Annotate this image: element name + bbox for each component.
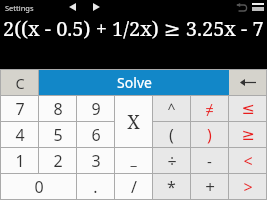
staticText: 0 xyxy=(34,176,44,198)
staticText: 4 xyxy=(15,124,25,146)
button[interactable]: ≤ xyxy=(229,96,266,121)
staticText: 7 xyxy=(15,98,25,120)
button[interactable]: * xyxy=(153,174,190,199)
staticText: ≤ xyxy=(241,99,255,118)
staticText: ÷ xyxy=(167,150,177,172)
button[interactable]: - xyxy=(191,148,228,173)
button[interactable] xyxy=(229,70,266,95)
staticText: ( xyxy=(169,124,174,146)
button[interactable]: / xyxy=(115,174,152,199)
button[interactable]: ^ xyxy=(153,96,190,121)
button[interactable] xyxy=(250,0,266,14)
button[interactable]: + xyxy=(191,174,228,199)
button[interactable]: . xyxy=(77,174,114,199)
staticText: 5 xyxy=(53,124,63,146)
staticText: X xyxy=(127,109,140,135)
staticText: 6 xyxy=(91,124,101,146)
staticText: Solve xyxy=(117,73,152,92)
button[interactable]: 4 xyxy=(1,122,38,147)
staticText: 8 xyxy=(53,98,63,120)
button[interactable]: > xyxy=(229,174,266,199)
button[interactable]: 0 xyxy=(1,174,76,199)
staticText: C xyxy=(15,73,25,93)
button[interactable]: 8 xyxy=(39,96,76,121)
button[interactable]: 3 xyxy=(77,148,114,173)
button[interactable]: 1 xyxy=(1,148,38,173)
button[interactable]: Settings xyxy=(0,0,45,14)
button[interactable]: 7 xyxy=(1,96,38,121)
button[interactable]: 2 xyxy=(39,148,76,173)
staticText: < xyxy=(243,150,253,172)
staticText: 1 xyxy=(15,150,25,172)
staticText: / xyxy=(131,176,137,198)
staticText: > xyxy=(243,176,253,198)
button[interactable]: ÷ xyxy=(153,148,190,173)
button[interactable] xyxy=(63,0,81,14)
staticText: ) xyxy=(207,124,212,146)
button[interactable]: _ xyxy=(115,148,152,173)
button[interactable]: ≥ xyxy=(229,122,266,147)
staticText: ^ xyxy=(167,99,176,118)
staticText: * xyxy=(167,176,176,198)
button[interactable]: ≠ xyxy=(191,96,228,121)
staticText: Settings xyxy=(5,3,34,13)
staticText: . xyxy=(93,176,98,198)
staticText: ≥ xyxy=(241,125,255,144)
button[interactable] xyxy=(233,0,250,14)
staticText: _ xyxy=(130,150,137,169)
staticText: 9 xyxy=(91,98,101,120)
staticText: ≠ xyxy=(205,99,214,119)
staticText: 2((x - 0.5) + 1/2x) ≥ 3.25x - 7 xyxy=(3,15,264,42)
button[interactable]: C xyxy=(1,70,38,95)
button[interactable]: 6 xyxy=(77,122,114,147)
staticText: 3 xyxy=(91,150,101,172)
button[interactable]: Solve xyxy=(39,70,229,95)
staticText: - xyxy=(207,151,212,171)
button[interactable]: ( xyxy=(153,122,190,147)
button[interactable]: 5 xyxy=(39,122,76,147)
button[interactable]: ) xyxy=(191,122,228,147)
button[interactable] xyxy=(87,0,105,14)
staticText: 2 xyxy=(53,150,63,172)
staticText: + xyxy=(205,175,215,198)
button[interactable]: < xyxy=(229,148,266,173)
button[interactable]: X xyxy=(115,96,152,147)
button[interactable]: 9 xyxy=(77,96,114,121)
